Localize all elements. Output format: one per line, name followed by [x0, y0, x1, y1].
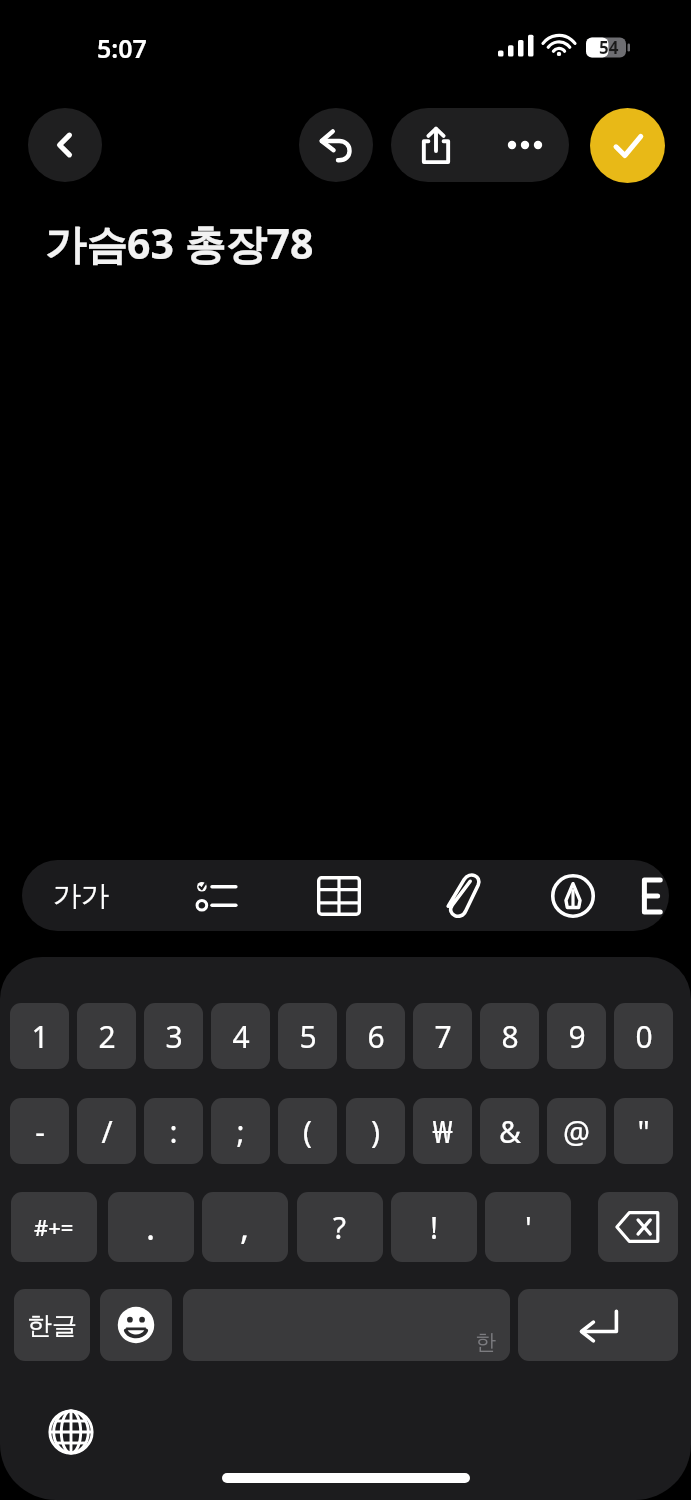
button[interactable]: Backspace [598, 1192, 678, 1262]
button[interactable]: 가가 [22, 860, 140, 931]
button[interactable]: Undo [299, 108, 373, 182]
staticText: 4 [232, 1016, 250, 1057]
staticText: ' [525, 1207, 532, 1248]
button[interactable]: Share [391, 108, 480, 182]
button[interactable]: Done [590, 108, 665, 183]
button[interactable]: 9 [547, 1003, 606, 1069]
staticText: 5 [299, 1016, 317, 1057]
button[interactable]: Markup [518, 860, 628, 931]
button[interactable]: ! [391, 1192, 477, 1262]
staticText: 6 [367, 1016, 385, 1057]
button[interactable]: ; [211, 1098, 270, 1164]
button[interactable]: #+= [11, 1192, 97, 1262]
button[interactable]: Space [183, 1289, 510, 1361]
button[interactable]: Table [284, 860, 394, 931]
button[interactable]: ( [278, 1098, 337, 1164]
staticText: : [169, 1111, 178, 1152]
button[interactable]: ) [346, 1098, 405, 1164]
staticText: 8 [501, 1016, 519, 1057]
button[interactable]: ₩ [413, 1098, 472, 1164]
staticText: 한글 [27, 1310, 77, 1341]
staticText: " [637, 1111, 650, 1152]
button[interactable]: Back [28, 108, 102, 182]
staticText: & [499, 1111, 521, 1152]
staticText: 7 [434, 1016, 452, 1057]
button[interactable]: 4 [211, 1003, 270, 1069]
staticText: , [240, 1204, 250, 1250]
staticText: 가슴63 총장78 [45, 215, 314, 271]
staticText: ; [236, 1111, 245, 1152]
button[interactable]: ? [297, 1192, 383, 1262]
staticText: ( [303, 1111, 312, 1152]
button[interactable]: : [144, 1098, 203, 1164]
button[interactable]: Attach [406, 860, 516, 931]
button[interactable]: Checklist [162, 860, 272, 931]
button[interactable]: ' [485, 1192, 571, 1262]
button[interactable]: 5 [278, 1003, 337, 1069]
staticText: . [146, 1204, 156, 1250]
button[interactable]: More options [480, 108, 569, 182]
button[interactable]: 3 [144, 1003, 203, 1069]
button[interactable]: " [614, 1098, 673, 1164]
button[interactable]: 한글 [14, 1289, 90, 1361]
staticText: 한 [475, 1329, 496, 1355]
button[interactable]: @ [547, 1098, 606, 1164]
button[interactable]: Emoji [100, 1289, 172, 1361]
staticText: 0 [635, 1016, 653, 1057]
button[interactable]: 7 [413, 1003, 472, 1069]
button[interactable]: & [480, 1098, 539, 1164]
staticText: 2 [98, 1016, 116, 1057]
staticText: 54 [599, 36, 619, 59]
button[interactable]: Change keyboard language [42, 1403, 100, 1461]
staticText: #+= [34, 1212, 74, 1242]
button[interactable]: 8 [480, 1003, 539, 1069]
staticText: @ [563, 1111, 590, 1152]
button[interactable]: 1 [10, 1003, 69, 1069]
button[interactable]: . [108, 1192, 194, 1262]
button[interactable]: 0 [614, 1003, 673, 1069]
button[interactable]: More formatting [640, 860, 669, 931]
button[interactable]: , [202, 1192, 288, 1262]
staticText: ₩ [432, 1111, 453, 1152]
staticText: ! [430, 1207, 439, 1248]
staticText: 9 [568, 1016, 586, 1057]
button[interactable]: - [10, 1098, 69, 1164]
staticText: 3 [165, 1016, 183, 1057]
button[interactable]: / [77, 1098, 136, 1164]
button[interactable]: Return [518, 1289, 678, 1361]
staticText: 5:07 [97, 31, 147, 65]
staticText: - [35, 1111, 45, 1152]
button[interactable]: 2 [77, 1003, 136, 1069]
staticText: 가가 [53, 878, 109, 913]
staticText: 1 [31, 1016, 49, 1057]
staticText: ? [333, 1207, 347, 1248]
staticText: ) [371, 1111, 380, 1152]
staticText: / [101, 1111, 113, 1152]
button[interactable]: 6 [346, 1003, 405, 1069]
